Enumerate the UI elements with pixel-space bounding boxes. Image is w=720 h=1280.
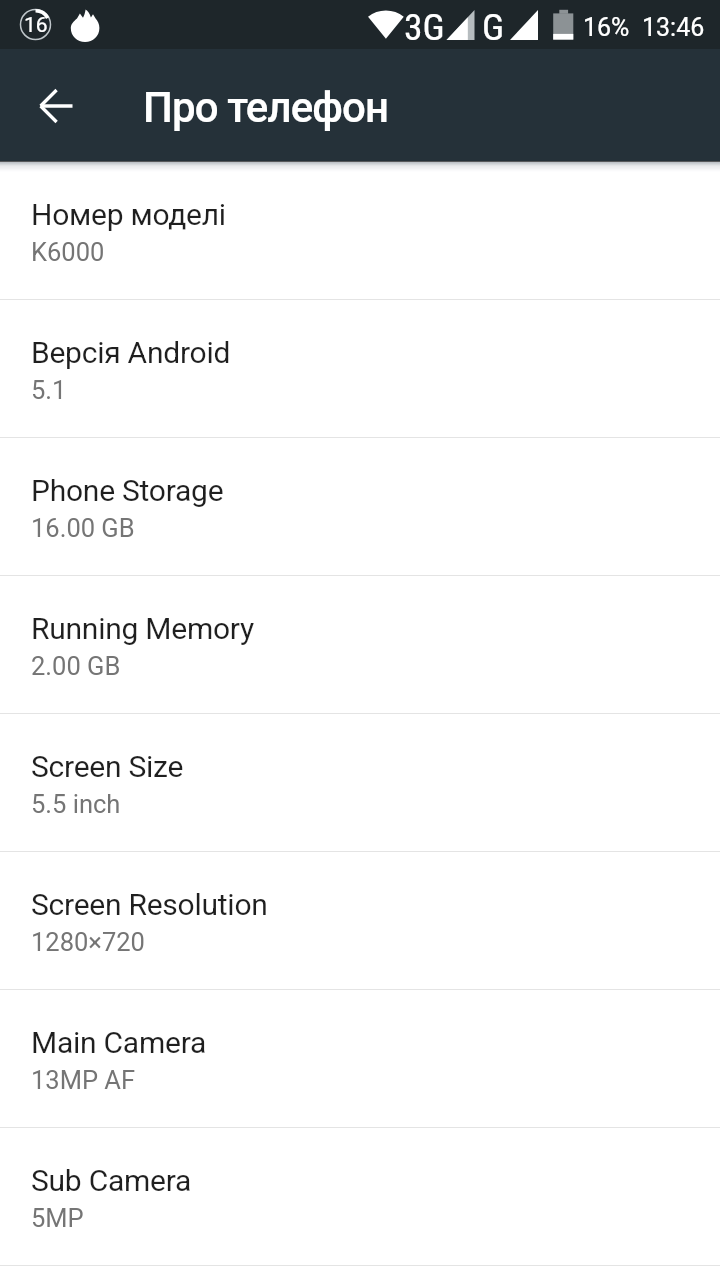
button[interactable]: Running Memory bbox=[0, 576, 720, 714]
staticText: Версія Android bbox=[31, 335, 231, 370]
button[interactable]: Screen Resolution bbox=[0, 852, 720, 990]
button[interactable]: Версія Android bbox=[0, 300, 720, 438]
staticText: Номер моделі bbox=[31, 197, 226, 232]
staticText: Screen Size bbox=[31, 749, 184, 784]
staticText: 2.00 GB bbox=[31, 651, 121, 681]
staticText: Sub Camera bbox=[31, 1163, 192, 1198]
staticText: Screen Resolution bbox=[31, 887, 268, 922]
staticText: 5.1 bbox=[31, 375, 67, 405]
staticText: Про телефон bbox=[143, 83, 389, 132]
staticText: 13MP AF bbox=[31, 1065, 136, 1095]
staticText: 13:46 bbox=[642, 13, 705, 42]
staticText: 5MP bbox=[31, 1203, 84, 1233]
button[interactable]: Phone Storage bbox=[0, 438, 720, 576]
staticText: 16 bbox=[24, 13, 48, 38]
staticText: G bbox=[482, 5, 505, 49]
staticText: 16.00 GB bbox=[31, 513, 135, 543]
staticText: 3G bbox=[404, 5, 445, 49]
button[interactable]: Номер моделі bbox=[0, 162, 720, 300]
button[interactable]: Main Camera bbox=[0, 990, 720, 1128]
staticText: K6000 bbox=[31, 237, 105, 267]
button[interactable]: Sub Camera bbox=[0, 1128, 720, 1266]
staticText: Phone Storage bbox=[31, 473, 224, 508]
staticText: Main Camera bbox=[31, 1025, 207, 1060]
staticText: 16% bbox=[583, 13, 630, 42]
staticText: Running Memory bbox=[31, 611, 254, 646]
staticText: 5.5 inch bbox=[31, 789, 121, 819]
staticText: 1280×720 bbox=[31, 927, 145, 957]
button[interactable]: Back bbox=[20, 70, 92, 142]
button[interactable]: Screen Size bbox=[0, 714, 720, 852]
